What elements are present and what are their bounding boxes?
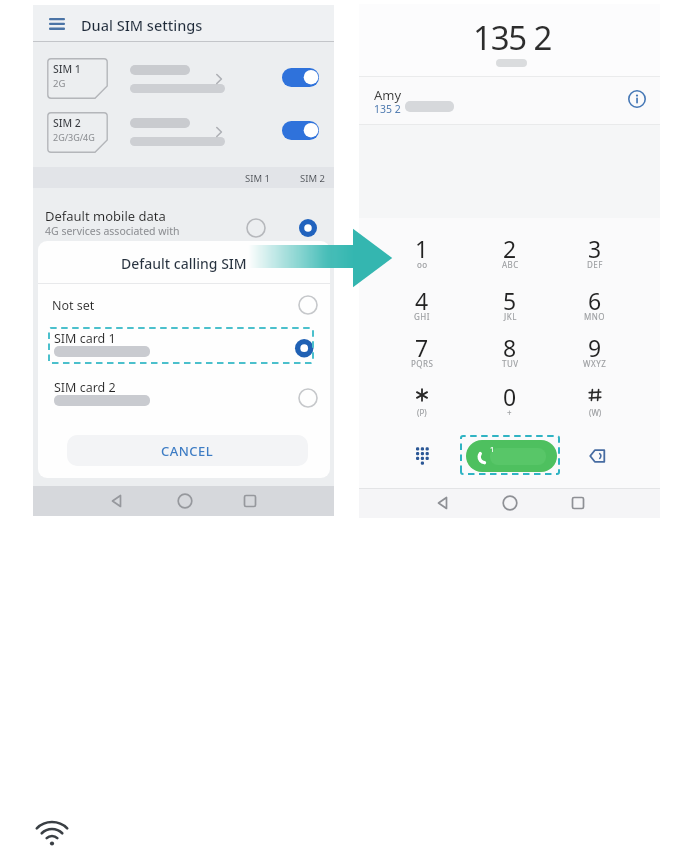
staticText: Dual SIM settings bbox=[81, 15, 203, 35]
staticText: 8 bbox=[503, 332, 517, 360]
staticText: Not set bbox=[52, 297, 95, 314]
button[interactable] bbox=[297, 217, 319, 239]
button[interactable] bbox=[589, 449, 606, 463]
button[interactable] bbox=[282, 121, 319, 140]
button[interactable] bbox=[628, 90, 646, 108]
staticText: SIM 2 bbox=[300, 172, 325, 185]
staticText: 0 bbox=[503, 381, 517, 409]
staticText: 2G/3G/4G bbox=[53, 131, 95, 143]
staticText: 4G services associated with bbox=[45, 224, 180, 238]
staticText: 2G bbox=[53, 77, 66, 90]
button[interactable] bbox=[282, 68, 319, 87]
button[interactable] bbox=[436, 496, 450, 510]
staticText: Amy bbox=[374, 86, 402, 104]
button[interactable] bbox=[33, 53, 334, 105]
staticText: + bbox=[507, 407, 513, 418]
button[interactable]: 2 bbox=[480, 233, 540, 275]
button[interactable]: 5 bbox=[480, 285, 540, 327]
staticText: 1 bbox=[415, 233, 429, 261]
staticText: 5 bbox=[503, 285, 517, 313]
button[interactable]: CANCEL bbox=[67, 435, 308, 466]
staticText: SIM card 2 bbox=[54, 379, 116, 396]
button[interactable]: 8 bbox=[480, 332, 540, 374]
staticText: SIM 1 bbox=[245, 172, 270, 185]
button[interactable] bbox=[411, 444, 435, 468]
button[interactable] bbox=[571, 496, 585, 510]
staticText: WXYZ bbox=[583, 358, 607, 369]
staticText: DEF bbox=[587, 259, 603, 270]
staticText: 3 bbox=[588, 233, 602, 261]
staticText: 7 bbox=[415, 332, 429, 360]
staticText: ABC bbox=[502, 259, 519, 270]
button[interactable]: 3 bbox=[565, 233, 625, 275]
button[interactable] bbox=[297, 294, 319, 316]
button[interactable] bbox=[177, 493, 193, 509]
staticText: 9 bbox=[588, 332, 602, 360]
staticText: 6 bbox=[588, 285, 602, 313]
staticText: 135 2 bbox=[374, 102, 401, 116]
staticText: PQRS bbox=[411, 358, 434, 369]
staticText: CANCEL bbox=[161, 442, 214, 460]
button[interactable] bbox=[33, 107, 334, 159]
button[interactable] bbox=[38, 284, 330, 326]
staticText: TUV bbox=[502, 358, 519, 369]
staticText: (W) bbox=[589, 407, 602, 418]
staticText: SIM card 1 bbox=[54, 330, 116, 347]
staticText: oo bbox=[417, 259, 428, 270]
staticText: 4 bbox=[415, 285, 429, 313]
button[interactable] bbox=[392, 381, 452, 423]
button[interactable] bbox=[359, 77, 660, 124]
staticText: JKL bbox=[504, 311, 517, 322]
button[interactable] bbox=[293, 337, 315, 359]
staticText: (P) bbox=[417, 407, 427, 418]
button[interactable] bbox=[38, 373, 330, 420]
staticText: 2 bbox=[503, 233, 517, 261]
button[interactable] bbox=[297, 387, 319, 409]
button[interactable]: 1 bbox=[466, 440, 557, 472]
button[interactable] bbox=[502, 495, 518, 511]
button[interactable] bbox=[49, 18, 65, 30]
staticText: 1 bbox=[490, 444, 495, 454]
staticText: Default calling SIM bbox=[121, 254, 247, 273]
button[interactable]: 1 bbox=[392, 233, 452, 275]
button[interactable] bbox=[243, 494, 257, 508]
button[interactable] bbox=[38, 326, 330, 373]
button[interactable]: 9 bbox=[565, 332, 625, 374]
button[interactable]: 7 bbox=[392, 332, 452, 374]
button[interactable]: 0 bbox=[480, 381, 540, 423]
staticText: SIM 2 bbox=[53, 116, 81, 130]
button[interactable]: 6 bbox=[565, 285, 625, 327]
button[interactable] bbox=[245, 217, 267, 239]
button[interactable] bbox=[110, 494, 124, 508]
staticText: Default mobile data bbox=[45, 207, 166, 225]
staticText: GHI bbox=[414, 311, 430, 322]
button[interactable] bbox=[565, 381, 625, 423]
staticText: MNO bbox=[584, 311, 606, 322]
staticText: 135 2 bbox=[473, 15, 552, 60]
button[interactable]: 4 bbox=[392, 285, 452, 327]
staticText: SIM 1 bbox=[53, 62, 81, 76]
